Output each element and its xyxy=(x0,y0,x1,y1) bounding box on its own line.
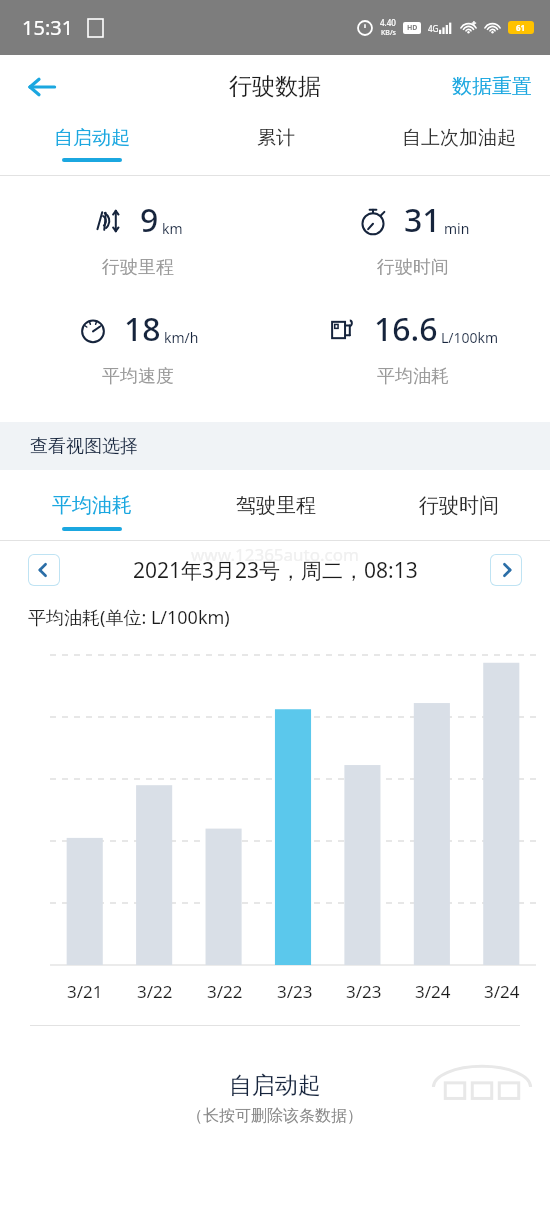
button[interactable]: 平均油耗 xyxy=(0,470,184,540)
staticText: 3/21 xyxy=(67,980,103,1003)
staticText: 行驶里程 xyxy=(102,256,174,279)
staticText: 平均油耗(单位: L/100km) xyxy=(28,605,230,630)
button[interactable]: 累计 xyxy=(184,118,367,175)
staticText: 2021年3月23号，周二，08:13 xyxy=(133,556,418,585)
button[interactable]: Back xyxy=(14,59,70,115)
staticText: 16.6 xyxy=(374,307,438,351)
staticText: 平均油耗 xyxy=(52,493,132,518)
staticText: L/100km xyxy=(441,328,499,347)
button[interactable]: 行驶时间 xyxy=(367,470,550,540)
staticText: 自上次加油起 xyxy=(402,126,516,150)
staticText: （长按可删除该条数据） xyxy=(187,1106,363,1126)
staticText: 3/22 xyxy=(207,980,243,1003)
staticText: 自启动起 xyxy=(54,126,130,150)
button[interactable]: 18 xyxy=(0,307,275,388)
staticText: 3/24 xyxy=(484,980,520,1003)
staticText: min xyxy=(444,219,470,238)
staticText: 61 xyxy=(516,22,526,33)
staticText: 3/24 xyxy=(415,980,451,1003)
staticText: 31 xyxy=(404,198,441,242)
button[interactable]: 自上次加油起 xyxy=(367,118,550,175)
staticText: 行驶时间 xyxy=(419,493,499,518)
staticText: 3/23 xyxy=(277,980,313,1003)
button[interactable]: 31 xyxy=(275,198,550,279)
staticText: km xyxy=(162,219,183,238)
staticText: 平均速度 xyxy=(102,365,174,388)
button[interactable]: 9 xyxy=(0,198,275,279)
staticText: 9 xyxy=(140,198,159,242)
staticText: KB/s xyxy=(381,28,396,38)
button[interactable]: Previous day xyxy=(28,554,60,586)
button[interactable]: 自启动起 xyxy=(0,118,184,175)
staticText: 累计 xyxy=(257,126,295,150)
button[interactable]: Next day xyxy=(490,554,522,586)
staticText: 行驶时间 xyxy=(377,256,449,279)
staticText: 3/23 xyxy=(346,980,382,1003)
staticText: 驾驶里程 xyxy=(236,493,316,518)
button[interactable]: 16.6 xyxy=(275,307,550,388)
staticText: 3/22 xyxy=(137,980,173,1003)
staticText: 查看视图选择 xyxy=(30,435,138,458)
staticText: 18 xyxy=(124,307,161,351)
staticText: 15:31 xyxy=(22,14,74,41)
button[interactable]: 驾驶里程 xyxy=(184,470,367,540)
staticText: www.12365auto.com xyxy=(191,543,359,566)
button[interactable]: 数据重置 xyxy=(434,64,550,109)
staticText: 4.40 xyxy=(380,17,396,28)
staticText: 平均油耗 xyxy=(377,365,449,388)
staticText: 行驶数据 xyxy=(229,72,321,101)
staticText: km/h xyxy=(164,328,199,347)
staticText: 数据重置 xyxy=(452,74,532,99)
staticText: HD xyxy=(407,23,418,33)
staticText: 4G xyxy=(428,23,439,34)
staticText: 自启动起 xyxy=(229,1071,321,1100)
